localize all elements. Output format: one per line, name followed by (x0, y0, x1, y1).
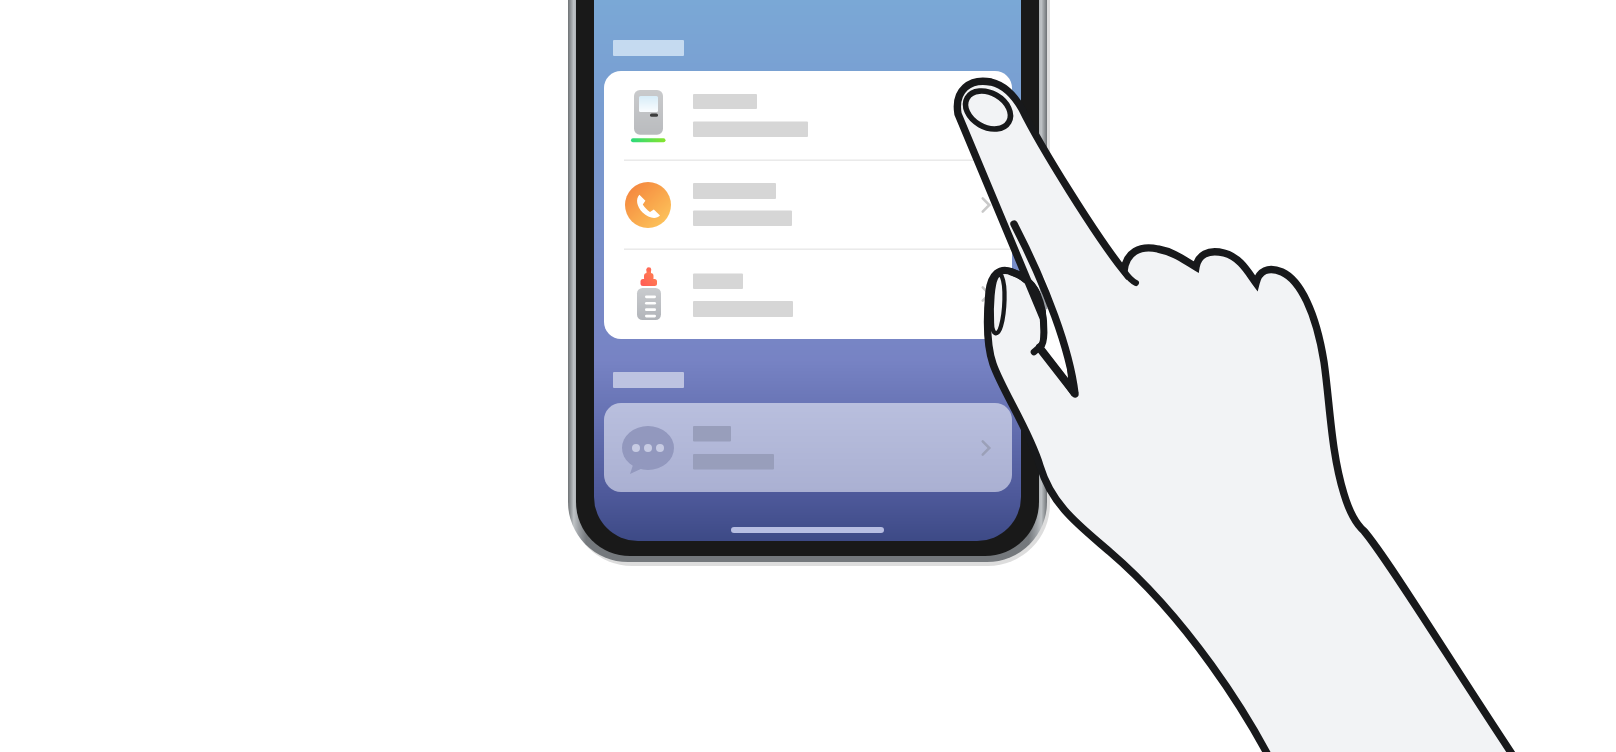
button[interactable]: Messages (604, 403, 1012, 492)
button[interactable]: Call (604, 160, 1012, 249)
button[interactable]: Feeding (604, 249, 1012, 339)
button[interactable]: Baby monitor (604, 71, 1012, 160)
